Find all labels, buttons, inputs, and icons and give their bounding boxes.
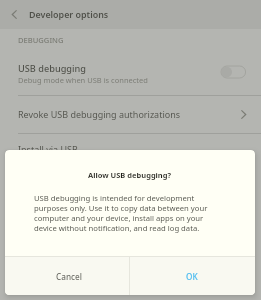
staticText: Cancel [56, 271, 82, 282]
staticText: USB debugging [18, 62, 86, 75]
button[interactable]: Install via USB [0, 134, 261, 171]
staticText: Revoke USB debugging authorizations [18, 108, 238, 120]
staticText: USB debugging is intended for developmen… [34, 193, 226, 233]
button[interactable]: USB debugging toggle [216, 63, 245, 83]
button[interactable]: Revoke USB debugging authorizations [0, 96, 261, 133]
button[interactable]: OK [130, 257, 255, 295]
staticText: Allow USB debugging? [88, 170, 172, 180]
button[interactable]: Navigate up [0, 0, 29, 29]
staticText: Install via USB [18, 143, 246, 155]
staticText: Debug mode when USB is connected [18, 75, 148, 85]
staticText: DEBUGGING [18, 35, 64, 45]
staticText: Developer options [29, 8, 109, 20]
staticText: OK [186, 271, 198, 282]
button[interactable]: USB debugging [0, 50, 261, 95]
button[interactable]: Cancel [5, 257, 129, 295]
